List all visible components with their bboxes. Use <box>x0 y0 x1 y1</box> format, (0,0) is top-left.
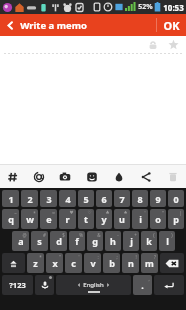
button[interactable]: 3 <box>40 190 57 207</box>
button[interactable]: o <box>150 209 166 229</box>
staticText: ¤ <box>52 210 55 216</box>
staticText: ; <box>116 254 118 260</box>
staticText: * <box>39 254 42 260</box>
button[interactable]: d <box>50 231 67 251</box>
staticText: - <box>117 232 119 238</box>
button[interactable]: Enter <box>154 275 184 295</box>
staticText: ~ <box>14 210 17 216</box>
button[interactable]: c <box>65 253 82 273</box>
staticText: English <box>83 281 104 289</box>
staticText: v <box>90 257 96 269</box>
button[interactable]: Lock memo <box>144 36 161 53</box>
button[interactable]: Share <box>132 165 159 188</box>
staticText: n <box>128 257 134 269</box>
button[interactable]: e <box>40 209 57 229</box>
staticText: m <box>145 257 154 269</box>
button[interactable]: q <box>2 209 19 229</box>
button[interactable]: r <box>59 209 76 229</box>
staticText: " <box>162 210 164 216</box>
staticText: 2 <box>27 193 33 205</box>
button[interactable]: 4 <box>59 190 76 207</box>
staticText: e <box>46 213 52 225</box>
staticText: ♣ <box>105 210 110 215</box>
staticText: @ <box>22 232 27 238</box>
button[interactable]: Back <box>0 14 20 36</box>
button[interactable]: Shift <box>2 253 25 273</box>
button[interactable]: m <box>141 253 158 273</box>
button[interactable]: n <box>122 253 139 273</box>
button[interactable]: s <box>31 231 48 251</box>
staticText: ?123 <box>9 280 26 290</box>
button[interactable]: Camera <box>52 165 78 188</box>
button[interactable]: 5 <box>78 190 94 207</box>
staticText: ' <box>144 210 146 216</box>
button[interactable]: Draw <box>105 165 132 188</box>
staticText: 9 <box>155 193 161 205</box>
staticText: & <box>97 232 101 238</box>
button[interactable]: j <box>123 231 139 251</box>
staticText: " <box>59 254 61 260</box>
button[interactable]: a <box>12 231 29 251</box>
staticText: k <box>146 235 152 247</box>
button[interactable]: . <box>133 275 152 295</box>
button[interactable]: 0 <box>168 190 184 207</box>
staticText: ♥ <box>69 210 74 215</box>
staticText: l <box>166 235 169 247</box>
staticText: p <box>173 213 179 225</box>
button[interactable]: y <box>96 209 112 229</box>
staticText: ♠ <box>123 210 128 215</box>
button[interactable]: 6 <box>96 190 112 207</box>
button[interactable]: Voice input <box>35 275 54 295</box>
button[interactable]: b <box>103 253 120 273</box>
staticText: 52% <box>138 2 153 12</box>
button[interactable]: Emoticon <box>78 165 105 188</box>
button[interactable]: Mention <box>26 165 52 188</box>
staticText: Write a memo <box>20 19 87 32</box>
button[interactable]: Backspace <box>160 253 184 273</box>
staticText: 5 <box>83 193 89 205</box>
button[interactable]: h <box>105 231 121 251</box>
staticText: w <box>26 213 34 225</box>
staticText: o <box>155 213 161 225</box>
button[interactable]: Delete <box>159 165 186 188</box>
staticText: g <box>92 235 98 247</box>
button[interactable]: 1 <box>2 190 19 207</box>
button[interactable]: ?123 <box>2 275 33 295</box>
staticText: ' <box>78 254 80 260</box>
button[interactable]: Hashtag <box>0 165 26 188</box>
button[interactable]: 2 <box>21 190 38 207</box>
button[interactable]: 9 <box>150 190 166 207</box>
staticText: q <box>8 213 14 225</box>
staticText: t <box>84 213 88 225</box>
button[interactable]: f <box>69 231 85 251</box>
staticText: s <box>37 235 42 247</box>
button[interactable]: z <box>27 253 44 273</box>
staticText: 0 <box>173 193 179 205</box>
button[interactable]: OK <box>157 14 186 36</box>
button[interactable]: i <box>132 209 148 229</box>
button[interactable]: g <box>87 231 103 251</box>
staticText: 7 <box>119 193 125 205</box>
staticText: j <box>130 235 133 247</box>
button[interactable]: v <box>84 253 101 273</box>
button[interactable]: l <box>159 231 175 251</box>
button[interactable]: u <box>114 209 130 229</box>
button[interactable]: p <box>168 209 184 229</box>
button[interactable]: Space <box>56 275 131 295</box>
staticText: ! <box>135 254 137 260</box>
staticText: $ <box>62 232 65 238</box>
button[interactable]: 8 <box>132 190 148 207</box>
staticText: d <box>56 235 62 247</box>
staticText: h <box>110 235 116 247</box>
button[interactable]: k <box>141 231 157 251</box>
button[interactable]: Favorite <box>165 36 182 53</box>
staticText: z <box>33 257 38 269</box>
staticText: 8 <box>137 193 143 205</box>
staticText: : <box>97 254 99 260</box>
button[interactable]: t <box>78 209 94 229</box>
staticText: y <box>101 213 107 225</box>
staticText: % <box>79 232 83 238</box>
button[interactable]: w <box>21 209 38 229</box>
button[interactable]: x <box>46 253 63 273</box>
button[interactable]: 7 <box>114 190 130 207</box>
